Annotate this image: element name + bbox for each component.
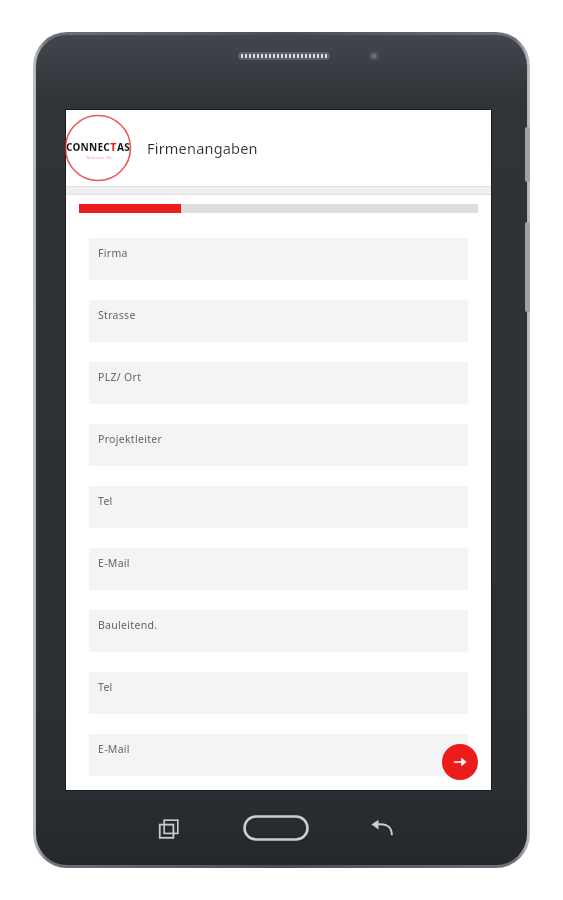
button[interactable]: Recent apps: [153, 813, 185, 845]
staticText: E-Mail: [98, 742, 130, 756]
staticText: E-Mail: [98, 556, 130, 570]
button[interactable]: Next: [442, 744, 478, 780]
button[interactable]: Tel: [89, 486, 468, 528]
button[interactable]: Connectas logo: [64, 114, 132, 182]
button[interactable]: Bauleitend.: [89, 610, 468, 652]
button[interactable]: Back: [366, 813, 398, 845]
staticText: Bauleitend.: [98, 618, 158, 632]
button[interactable]: PLZ/ Ort: [89, 362, 468, 404]
staticText: AS: [117, 140, 131, 154]
staticText: Projektleiter: [98, 432, 163, 446]
staticText: Wohnbau AG: [86, 155, 112, 160]
staticText: CONNEC: [66, 140, 110, 154]
button[interactable]: Strasse: [89, 300, 468, 342]
staticText: Firmenangaben: [147, 138, 258, 158]
button[interactable]: Home: [239, 811, 313, 845]
staticText: Tel: [98, 494, 113, 508]
staticText: PLZ/ Ort: [98, 370, 142, 384]
staticText: Strasse: [98, 308, 136, 322]
button[interactable]: Projektleiter: [89, 424, 468, 466]
button[interactable]: E-Mail: [89, 548, 468, 590]
staticText: Tel: [98, 680, 113, 694]
button[interactable]: E-Mail: [89, 734, 468, 776]
staticText: Firma: [98, 246, 128, 260]
button[interactable]: Tel: [89, 672, 468, 714]
button[interactable]: Firma: [89, 238, 468, 280]
staticText: T: [110, 139, 117, 154]
